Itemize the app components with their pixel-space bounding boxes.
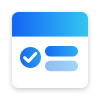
button[interactable]: Tasks <box>12 12 88 88</box>
